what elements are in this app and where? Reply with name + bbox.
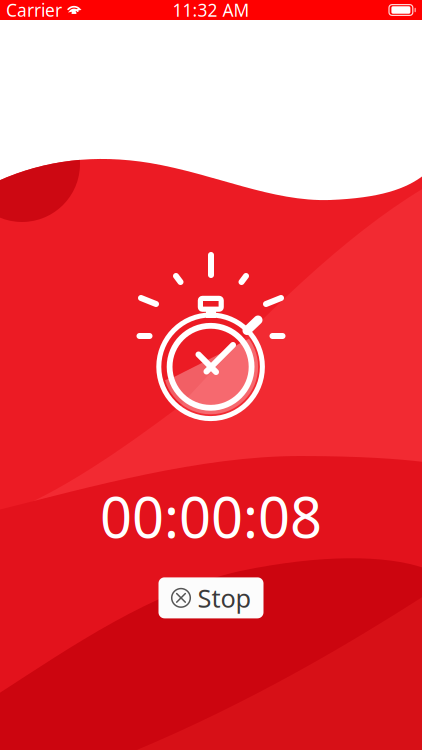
staticText: 00:00:08	[100, 479, 322, 553]
staticText: Carrier	[6, 0, 62, 21]
button[interactable]: Stop	[158, 577, 263, 618]
staticText: 11:32 AM	[172, 0, 249, 21]
staticText: Stop	[197, 581, 251, 615]
